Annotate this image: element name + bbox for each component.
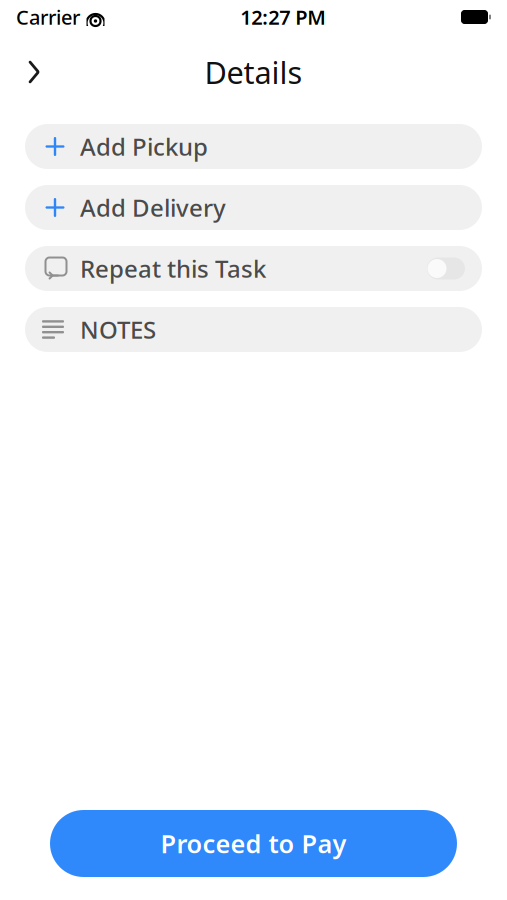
button[interactable]: Proceed to Pay — [50, 810, 457, 877]
staticText: Carrier — [16, 4, 80, 30]
staticText: Add Pickup — [80, 131, 208, 162]
staticText: NOTES — [80, 314, 156, 345]
button[interactable]: Add Pickup — [25, 124, 482, 169]
staticText: Add Delivery — [80, 192, 226, 223]
staticText: Details — [204, 52, 302, 92]
staticText: Proceed to Pay — [160, 827, 346, 860]
button[interactable]: Back — [12, 50, 56, 94]
button[interactable]: Add Delivery — [25, 185, 482, 230]
staticText: 12:27 PM — [240, 4, 326, 30]
button[interactable]: Repeat this Task — [25, 246, 482, 291]
staticText: Repeat this Task — [80, 253, 266, 284]
button[interactable]: NOTES — [25, 307, 482, 352]
